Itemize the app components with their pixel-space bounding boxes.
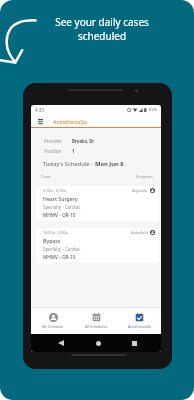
staticText: Arguello <box>132 188 148 193</box>
staticText: MHMV - OR-10 <box>43 212 76 218</box>
button[interactable]: My Schedule <box>31 308 75 334</box>
staticText: 82% <box>149 107 158 113</box>
staticText: Specialty - Cardiac <box>43 204 81 210</box>
staticText: 10:00a - 2:00p <box>43 230 68 235</box>
staticText: Brooks, Dr <box>72 138 95 144</box>
staticText: My Schedule <box>42 324 64 329</box>
staticText: See your daily cases scheduled <box>10 15 194 43</box>
staticText: Case <box>41 174 51 180</box>
staticText: 1 <box>72 148 75 154</box>
staticText: Abdollahi <box>131 230 148 235</box>
staticText: AnesthesiaGo <box>128 324 152 329</box>
staticText: Mon Jun 6 <box>95 160 124 168</box>
button[interactable]: AnesthesiaGo <box>118 308 161 334</box>
button[interactable]: 5:10a - 8:15a <box>36 186 159 221</box>
staticText: Today's Schedule - <box>43 160 95 168</box>
staticText: AnesthesiaGo <box>53 118 88 125</box>
staticText: Provider <box>44 138 72 144</box>
staticText: MHMV - OR-10 <box>43 254 76 260</box>
button[interactable]: Home <box>92 337 104 349</box>
staticText: Position <box>44 148 72 154</box>
button[interactable]: All Schedules <box>75 308 118 334</box>
button[interactable]: Recent apps <box>128 337 140 349</box>
staticText: Bypass <box>43 237 61 244</box>
staticText: Heart Surgery <box>43 195 78 202</box>
button[interactable]: 10:00a - 2:00p <box>36 228 159 263</box>
staticText: Surgeon <box>136 174 153 180</box>
staticText: All Schedules <box>85 324 108 329</box>
button[interactable]: Open navigation menu <box>34 115 46 127</box>
button[interactable]: Back <box>55 337 67 349</box>
staticText: Specialty - Cardiac <box>43 246 81 252</box>
staticText: 4:33 <box>35 107 44 113</box>
staticText: 5:10a - 8:15a <box>43 188 66 193</box>
